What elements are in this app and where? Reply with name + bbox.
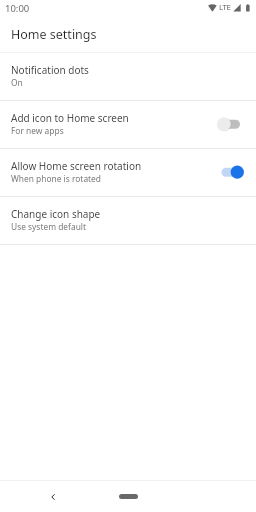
button[interactable]: Add icon to Home screen <box>0 101 256 148</box>
staticText: Use system default <box>11 221 87 232</box>
staticText: Add icon to Home screen <box>11 111 129 125</box>
staticText: Home settings <box>11 26 97 43</box>
staticText: LTE <box>219 2 231 13</box>
staticText: Change icon shape <box>11 207 101 221</box>
staticText: On <box>11 77 23 88</box>
button[interactable]: Change icon shape <box>0 197 256 244</box>
staticText: Allow Home screen rotation <box>11 159 142 173</box>
staticText: When phone is rotated <box>11 173 102 184</box>
staticText: For new apps <box>11 125 64 136</box>
button[interactable]: Notification dots <box>0 53 256 100</box>
button[interactable]: Allow Home screen rotation <box>0 149 256 196</box>
button[interactable]: Back <box>43 487 63 507</box>
button[interactable]: Toggle off <box>220 116 246 134</box>
button[interactable]: Home <box>98 486 158 506</box>
staticText: 10:00 <box>5 2 30 15</box>
button[interactable]: Toggle on <box>220 164 246 182</box>
staticText: Notification dots <box>11 63 89 77</box>
